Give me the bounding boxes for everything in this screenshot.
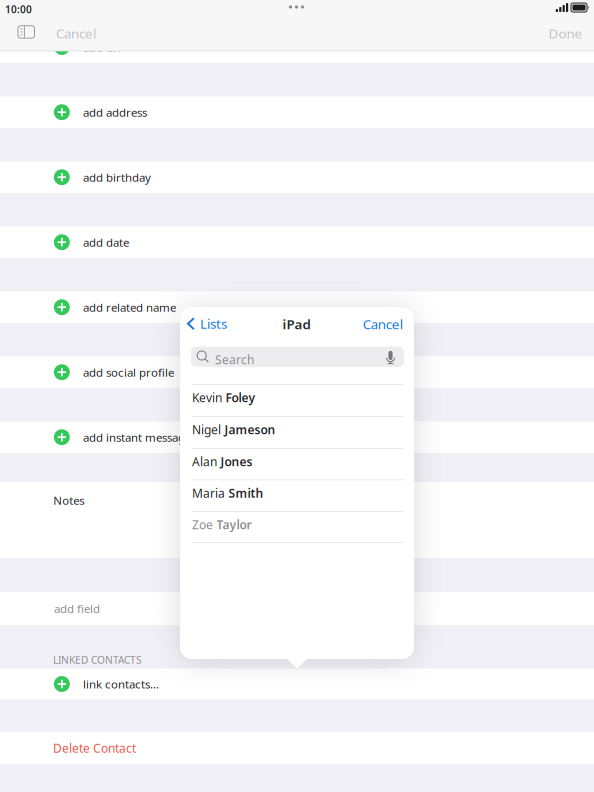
staticText: add instant message <box>83 429 191 445</box>
staticText: Search <box>215 351 254 368</box>
button[interactable]: Maria <box>0 478 404 509</box>
button[interactable]: add date <box>0 226 594 258</box>
button[interactable]: add address <box>0 96 594 128</box>
staticText: Done <box>548 24 582 42</box>
button[interactable]: add birthday <box>0 161 594 193</box>
staticText: add birthday <box>83 169 151 185</box>
staticText: Cancel <box>56 24 96 42</box>
staticText: Taylor <box>216 516 251 533</box>
staticText: add date <box>83 234 129 250</box>
staticText: add related name <box>83 299 176 315</box>
staticText: add address <box>83 104 147 120</box>
staticText: Zoe <box>192 516 213 533</box>
staticText: 10:00 <box>5 2 32 16</box>
button[interactable]: add social profile <box>0 356 594 388</box>
button[interactable]: Delete Contact <box>0 732 594 764</box>
button[interactable]: add related name <box>0 291 594 323</box>
button[interactable]: add url <box>0 31 594 63</box>
button[interactable]: Show sidebar <box>18 26 34 38</box>
staticText: Foley <box>225 389 255 406</box>
button[interactable]: Lists <box>187 315 227 333</box>
staticText: Kevin <box>192 389 222 406</box>
staticText: Maria <box>192 485 225 501</box>
button[interactable]: add instant message <box>0 421 594 453</box>
staticText: Alan <box>192 453 217 470</box>
button[interactable]: Cancel <box>363 315 403 333</box>
button[interactable]: link contacts... <box>0 668 594 699</box>
button[interactable]: Nigel <box>0 414 404 445</box>
staticText: add url <box>83 39 121 55</box>
button[interactable]: add field <box>0 592 594 625</box>
staticText: Notes <box>53 493 84 508</box>
staticText: Jones <box>220 453 252 470</box>
button[interactable]: Kevin <box>0 382 404 413</box>
staticText: LINKED CONTACTS <box>53 653 142 667</box>
staticText: Nigel <box>192 421 221 438</box>
staticText: Lists <box>200 315 227 333</box>
staticText: link contacts... <box>83 676 159 692</box>
button[interactable]: Cancel <box>56 24 96 42</box>
staticText: Cancel <box>363 315 403 333</box>
staticText: add social profile <box>83 364 174 380</box>
button[interactable]: Notes <box>0 480 594 520</box>
button[interactable]: Done <box>548 24 582 42</box>
staticText: Jameson <box>224 421 275 438</box>
staticText: add field <box>54 601 100 616</box>
button[interactable]: Alan <box>0 446 404 477</box>
staticText: Smith <box>228 485 263 501</box>
button[interactable]: Zoe <box>0 509 404 540</box>
staticText: iPad <box>282 315 310 333</box>
staticText: Delete Contact <box>53 740 136 756</box>
